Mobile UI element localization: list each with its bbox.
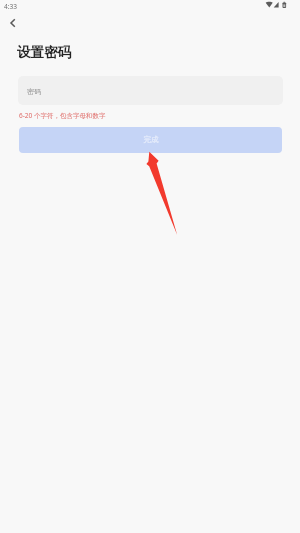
staticText: 密码 [27,87,41,96]
button[interactable]: 密码 [18,76,283,105]
staticText: 设置密码 [17,44,72,61]
staticText: 6-20 个字符，包含字母和数字 [19,111,106,120]
button[interactable]: Back [0,14,26,32]
staticText: 完成 [143,135,159,145]
staticText: 4:33 [4,2,18,11]
